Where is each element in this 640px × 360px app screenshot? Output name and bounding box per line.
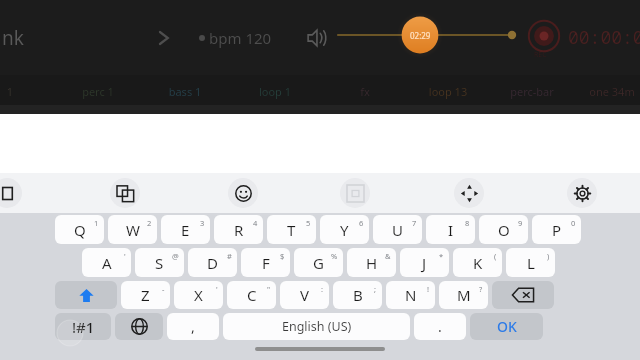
- staticText: T: [287, 220, 296, 240]
- button[interactable]: Settings: [567, 178, 597, 208]
- button[interactable]: P: [532, 215, 581, 244]
- button[interactable]: Next: [152, 26, 176, 50]
- button[interactable]: A: [82, 248, 131, 277]
- staticText: $: [280, 251, 285, 261]
- button[interactable]: Clipboard: [0, 178, 22, 208]
- button[interactable]: .: [414, 313, 466, 340]
- button[interactable]: L: [506, 248, 555, 277]
- staticText: F: [262, 253, 270, 273]
- button[interactable]: R: [214, 215, 263, 244]
- button[interactable]: G: [294, 248, 343, 277]
- staticText: P: [552, 220, 562, 240]
- staticText: .: [438, 317, 442, 336]
- staticText: H: [366, 253, 378, 273]
- staticText: ,: [191, 317, 195, 336]
- staticText: !: [427, 284, 430, 294]
- button[interactable]: !#1: [55, 313, 111, 340]
- staticText: English (US): [282, 318, 352, 335]
- button[interactable]: English (US): [223, 313, 410, 340]
- staticText: 4: [253, 218, 258, 228]
- button[interactable]: H: [347, 248, 396, 277]
- button[interactable]: D: [188, 248, 237, 277]
- button[interactable]: O: [479, 215, 528, 244]
- button[interactable]: S: [135, 248, 184, 277]
- button[interactable]: loop 1: [235, 84, 315, 99]
- staticText: 00:00:00: [568, 25, 640, 50]
- staticText: U: [392, 220, 403, 240]
- button[interactable]: B: [333, 281, 382, 309]
- staticText: V: [300, 285, 310, 305]
- button[interactable]: X: [174, 281, 223, 309]
- button[interactable]: C: [227, 281, 276, 309]
- button[interactable]: Shift: [55, 281, 117, 309]
- button[interactable]: U: [373, 215, 422, 244]
- staticText: ;: [374, 284, 377, 294]
- staticText: @: [172, 251, 179, 261]
- button[interactable]: Stickers: [340, 178, 370, 208]
- button[interactable]: Volume: [305, 25, 331, 51]
- button[interactable]: one 34m: [572, 84, 640, 99]
- staticText: R: [234, 220, 244, 240]
- button[interactable]: Position slider: [338, 12, 518, 58]
- button[interactable]: T: [267, 215, 316, 244]
- staticText: OK: [497, 317, 517, 336]
- button[interactable]: Y: [320, 215, 369, 244]
- staticText: W: [126, 220, 140, 240]
- staticText: 3: [200, 218, 205, 228]
- button[interactable]: perc 1: [58, 84, 138, 99]
- button[interactable]: 1: [0, 84, 20, 99]
- staticText: (: [494, 251, 497, 261]
- button[interactable]: I: [426, 215, 475, 244]
- button[interactable]: Emoji: [228, 178, 258, 208]
- staticText: J: [422, 253, 427, 273]
- staticText: 5: [306, 218, 311, 228]
- staticText: REC: [534, 50, 547, 60]
- button[interactable]: K: [453, 248, 502, 277]
- staticText: nk: [2, 25, 24, 51]
- button[interactable]: Q: [55, 215, 104, 244]
- button[interactable]: loop 13: [408, 84, 488, 99]
- staticText: *: [439, 251, 444, 261]
- staticText: 0: [571, 218, 576, 228]
- button[interactable]: Record: [528, 20, 560, 52]
- staticText: I: [448, 220, 454, 240]
- button[interactable]: Move cursor: [454, 178, 484, 208]
- button[interactable]: J: [400, 248, 449, 277]
- button[interactable]: M: [439, 281, 488, 309]
- button[interactable]: W: [108, 215, 157, 244]
- staticText: S: [155, 253, 164, 273]
- staticText: :: [321, 284, 324, 294]
- staticText: ": [267, 284, 271, 294]
- button[interactable]: OK: [470, 313, 543, 340]
- button[interactable]: E: [161, 215, 210, 244]
- staticText: %: [331, 251, 338, 261]
- button[interactable]: Translate: [110, 178, 140, 208]
- button[interactable]: ,: [167, 313, 219, 340]
- button[interactable]: Backspace: [492, 281, 554, 309]
- button[interactable]: N: [386, 281, 435, 309]
- staticText: 9: [518, 218, 523, 228]
- staticText: &: [385, 251, 391, 261]
- staticText: 02:29: [410, 30, 431, 41]
- button[interactable]: Change language: [115, 313, 163, 340]
- staticText: C: [247, 285, 257, 305]
- staticText: !#1: [72, 317, 95, 337]
- button[interactable]: V: [280, 281, 329, 309]
- staticText: Y: [340, 220, 349, 240]
- staticText: E: [181, 220, 190, 240]
- button[interactable]: Z: [121, 281, 170, 309]
- button[interactable]: bass 1: [145, 84, 225, 99]
- button[interactable]: bpm 120: [209, 28, 272, 48]
- staticText: A: [102, 253, 112, 273]
- button[interactable]: F: [241, 248, 290, 277]
- staticText: 6: [359, 218, 364, 228]
- button[interactable]: perc-bar: [492, 84, 572, 99]
- staticText: M: [457, 285, 471, 305]
- staticText: ': [216, 284, 218, 294]
- staticText: ): [547, 251, 550, 261]
- staticText: 7: [412, 218, 417, 228]
- staticText: 2: [147, 218, 152, 228]
- staticText: ?: [479, 284, 483, 294]
